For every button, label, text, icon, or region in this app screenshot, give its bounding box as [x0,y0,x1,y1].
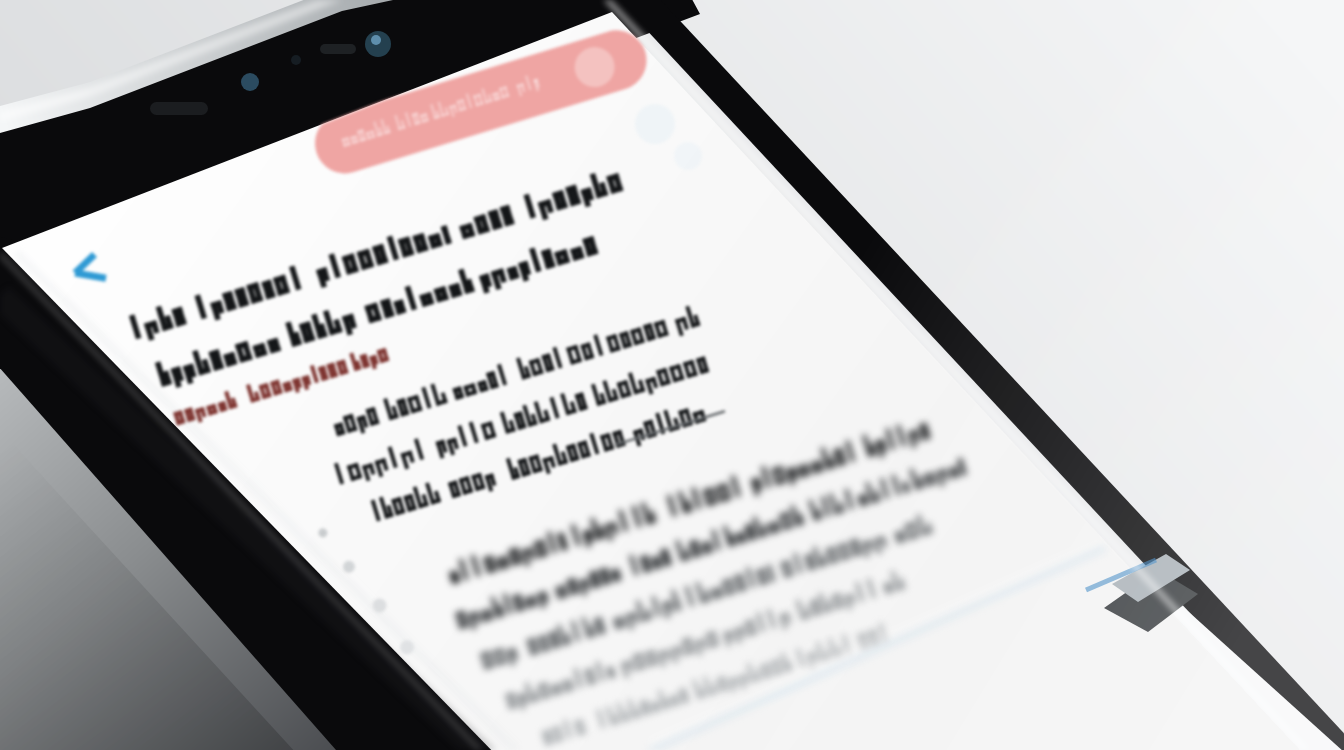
button[interactable] [0,0,1344,750]
